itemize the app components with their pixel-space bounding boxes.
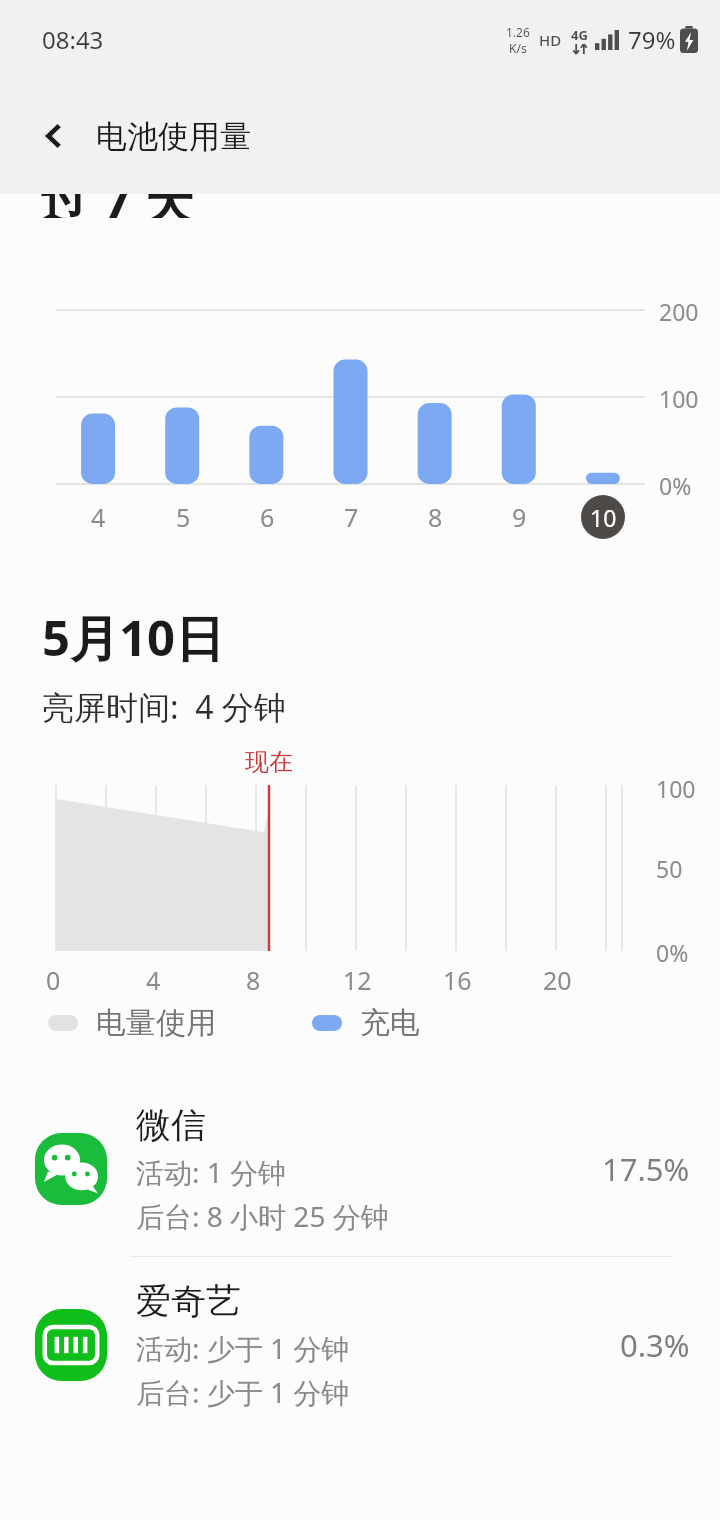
staticText: 16 xyxy=(443,963,472,997)
staticText: 电池使用量 xyxy=(96,117,251,156)
staticText: 4 xyxy=(146,963,161,997)
staticText: 100 xyxy=(659,383,699,414)
staticText: 100 xyxy=(656,773,696,804)
staticText: 活动: 1 分钟 xyxy=(136,1153,287,1191)
staticText: 200 xyxy=(659,296,699,327)
staticText: 5 xyxy=(176,500,191,534)
staticText: 1.26 xyxy=(506,24,530,40)
button[interactable]: 返回 xyxy=(22,104,86,168)
staticText: 4G xyxy=(571,26,588,44)
staticText: 充电 xyxy=(360,1004,420,1042)
staticText: 79% xyxy=(628,23,676,56)
staticText: 10 xyxy=(590,502,617,533)
staticText: 8 xyxy=(428,500,443,534)
staticText: 爱奇艺 xyxy=(136,1279,241,1323)
button[interactable]: 微信 xyxy=(0,1081,720,1256)
staticText: 8 xyxy=(246,963,261,997)
staticText: 0% xyxy=(656,937,689,968)
staticText: 0 xyxy=(46,963,61,997)
staticText: 08:43 xyxy=(42,23,104,56)
staticText: 9 xyxy=(512,500,527,534)
staticText: 50 xyxy=(656,853,683,884)
staticText: 17.5% xyxy=(602,1148,690,1190)
button[interactable]: 爱奇艺 xyxy=(0,1257,720,1432)
staticText: 5月10日 xyxy=(42,604,225,671)
staticText: 亮屏时间: 4 分钟 xyxy=(42,685,286,729)
staticText: 20 xyxy=(543,963,572,997)
staticText: 0% xyxy=(659,470,692,501)
staticText: 现在 xyxy=(245,747,293,777)
staticText: 0.3% xyxy=(620,1324,690,1366)
staticText: K/s xyxy=(509,40,527,56)
staticText: 后台: 8 小时 25 分钟 xyxy=(136,1197,389,1235)
staticText: HD xyxy=(539,30,562,50)
staticText: 微信 xyxy=(136,1103,206,1147)
staticText: 过 7 天 xyxy=(40,194,195,218)
staticText: 活动: 少于 1 分钟 xyxy=(136,1329,350,1367)
staticText: 电量使用 xyxy=(96,1004,216,1042)
staticText: 4 xyxy=(91,500,106,534)
staticText: 12 xyxy=(343,963,372,997)
staticText: 后台: 少于 1 分钟 xyxy=(136,1373,350,1411)
staticText: 7 xyxy=(344,500,359,534)
staticText: 6 xyxy=(260,500,275,534)
